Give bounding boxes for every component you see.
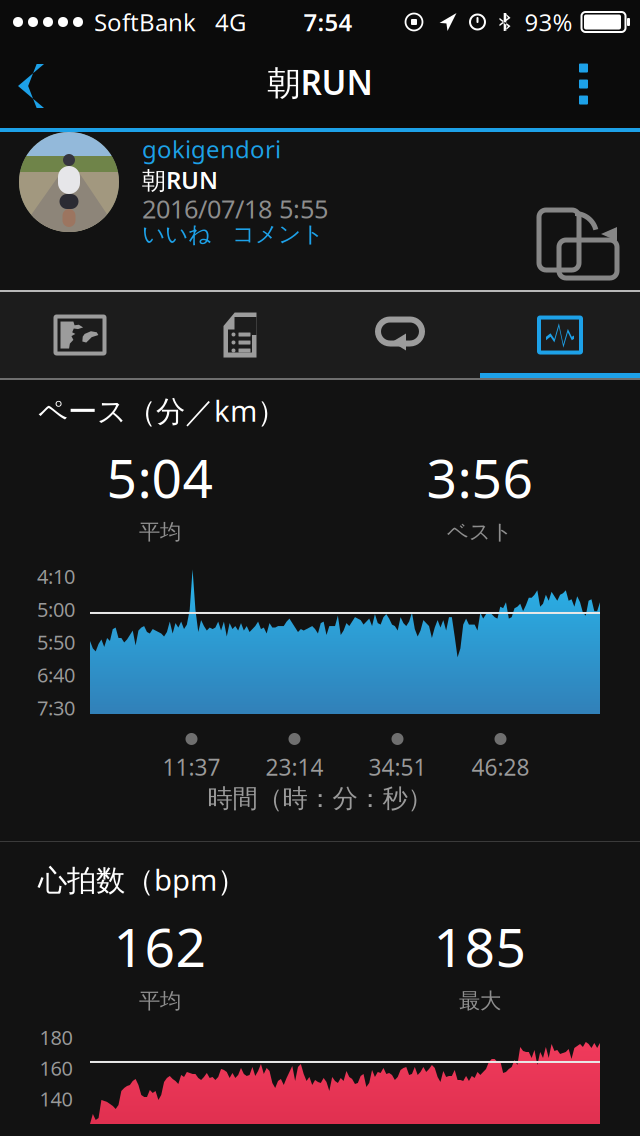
staticText: 46:28: [471, 752, 529, 782]
staticText: 5:50: [37, 629, 75, 655]
staticText: 23:14: [265, 752, 323, 782]
button[interactable]: コメント: [232, 220, 324, 248]
staticText: コメント: [232, 220, 324, 248]
staticText: 4:10: [37, 563, 75, 590]
staticText: 11:37: [162, 752, 220, 782]
button[interactable]: Details: [160, 292, 320, 378]
staticText: 4G: [215, 6, 246, 38]
staticText: SoftBank: [94, 6, 196, 38]
staticText: 160: [39, 1055, 72, 1081]
staticText: 7:30: [37, 694, 75, 721]
staticText: 140: [39, 1085, 72, 1112]
button[interactable]: More options: [547, 44, 640, 128]
button[interactable]: Laps: [320, 292, 480, 378]
staticText: 93%: [524, 6, 572, 38]
staticText: 162: [113, 911, 206, 982]
staticText: 朝RUN: [267, 60, 372, 104]
staticText: 6:40: [37, 662, 75, 688]
staticText: 180: [39, 1024, 72, 1051]
staticText: gokigendori: [142, 133, 281, 165]
staticText: 7:54: [303, 6, 352, 38]
button[interactable]: Back: [0, 44, 70, 128]
button[interactable]: Rotate device: [538, 206, 640, 290]
staticText: 3:56: [426, 442, 533, 513]
staticText: 2016/07/18 5:55: [142, 192, 328, 225]
button[interactable]: gokigendori: [142, 133, 281, 165]
staticText: 5:04: [106, 442, 213, 513]
staticText: 最大: [459, 988, 501, 1014]
staticText: 平均: [139, 988, 181, 1014]
staticText: 34:51: [368, 752, 426, 782]
staticText: 時間（時：分：秒）: [207, 783, 432, 814]
staticText: 朝RUN: [142, 164, 218, 196]
staticText: ペース（分／km）: [38, 391, 286, 430]
button[interactable]: いいね: [142, 220, 211, 248]
staticText: いいね: [142, 220, 211, 248]
staticText: 185: [433, 911, 526, 982]
staticText: ベスト: [447, 519, 513, 545]
staticText: 心拍数（bpm）: [38, 860, 246, 899]
button[interactable]: Map: [0, 292, 160, 378]
staticText: 5:00: [37, 596, 75, 622]
staticText: 平均: [139, 519, 181, 545]
button[interactable]: Graphs: [480, 292, 640, 378]
